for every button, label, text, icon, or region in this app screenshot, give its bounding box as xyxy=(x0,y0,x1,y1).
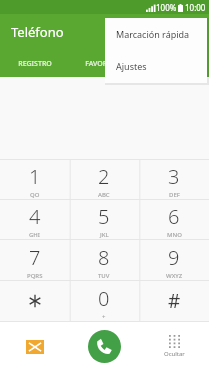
staticText: 0 xyxy=(98,285,110,312)
staticText: # xyxy=(168,288,181,314)
button[interactable]: 0 xyxy=(69,280,139,321)
button[interactable]: Ocultar xyxy=(139,321,209,372)
button[interactable]: 1 xyxy=(0,159,69,199)
staticText: MNO xyxy=(167,231,182,239)
button[interactable]: Llamar xyxy=(69,321,139,372)
button[interactable]: 3 xyxy=(139,159,209,199)
staticText: Ajustes xyxy=(116,60,147,72)
button[interactable]: 2 xyxy=(69,159,139,199)
staticText: 10:00 xyxy=(185,2,206,13)
button[interactable]: 5 xyxy=(69,199,139,239)
button[interactable]: Ajustes xyxy=(105,50,207,82)
button[interactable]: Mensaje xyxy=(0,321,69,372)
staticText: PQRS xyxy=(27,272,43,280)
button[interactable]: CONTACTOS xyxy=(139,50,209,77)
staticText: WXYZ xyxy=(166,272,183,280)
staticText: ABC xyxy=(98,191,110,199)
button[interactable]: FAVORITOS xyxy=(69,50,139,77)
staticText: 4 xyxy=(29,203,41,230)
staticText: 7 xyxy=(29,244,41,271)
button[interactable]: 9 xyxy=(139,239,209,280)
staticText: 100% xyxy=(156,2,177,13)
staticText: 1 xyxy=(29,163,41,190)
button[interactable]: 6 xyxy=(139,199,209,239)
staticText: REGISTRO xyxy=(18,59,52,69)
staticText: 9 xyxy=(168,244,180,271)
button[interactable]: 7 xyxy=(0,239,69,280)
button[interactable]: REGISTRO xyxy=(0,50,69,77)
staticText: QO xyxy=(30,191,40,199)
staticText: GHI xyxy=(29,231,40,239)
staticText: 2 xyxy=(98,163,110,190)
staticText: FAVORITOS xyxy=(85,59,123,69)
staticText: + xyxy=(102,313,106,321)
button[interactable]: # xyxy=(139,280,209,321)
button[interactable]: 8 xyxy=(69,239,139,280)
staticText: DEF xyxy=(169,191,180,199)
staticText: Teléfono xyxy=(11,23,64,41)
button[interactable]: Marcación rápida xyxy=(105,18,207,50)
staticText: Ocultar xyxy=(164,350,185,358)
staticText: TUV xyxy=(98,272,110,280)
staticText: 3 xyxy=(168,163,180,190)
staticText: JKL xyxy=(100,231,109,239)
staticText: Marcación rápida xyxy=(116,28,190,40)
staticText: 6 xyxy=(168,203,180,230)
button[interactable]: 4 xyxy=(0,199,69,239)
staticText: 5 xyxy=(98,203,110,230)
staticText: 8 xyxy=(98,244,110,271)
button[interactable] xyxy=(0,280,69,321)
